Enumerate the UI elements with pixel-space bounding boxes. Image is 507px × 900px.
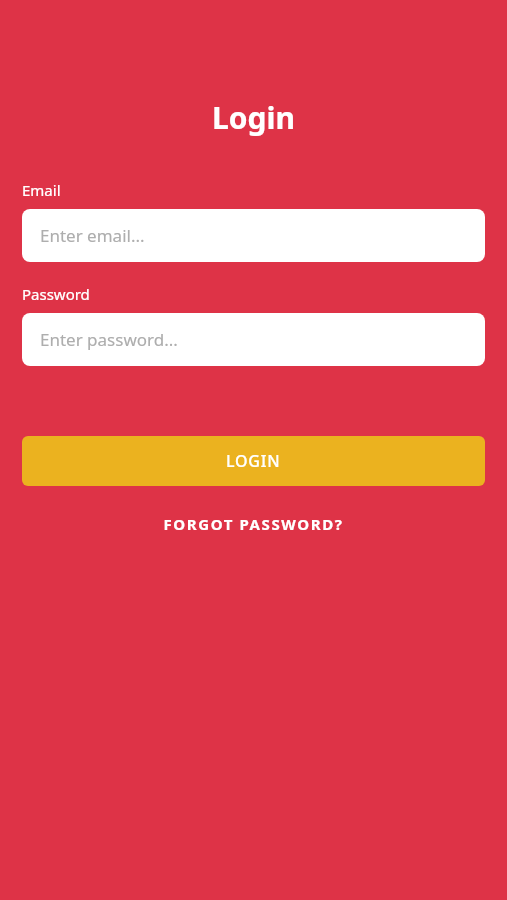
staticText: LOGIN (226, 450, 281, 472)
button[interactable]: Email input field (22, 209, 485, 262)
staticText: FORGOT PASSWORD? (163, 514, 344, 534)
button[interactable]: FORGOT PASSWORD? (22, 506, 485, 542)
button[interactable]: LOGIN (22, 436, 485, 486)
staticText: Login (22, 97, 485, 138)
button[interactable]: Password input field (22, 313, 485, 366)
staticText: Enter password... (40, 328, 178, 351)
staticText: Email (22, 180, 61, 200)
staticText: Enter email... (40, 224, 145, 247)
staticText: Password (22, 284, 90, 304)
